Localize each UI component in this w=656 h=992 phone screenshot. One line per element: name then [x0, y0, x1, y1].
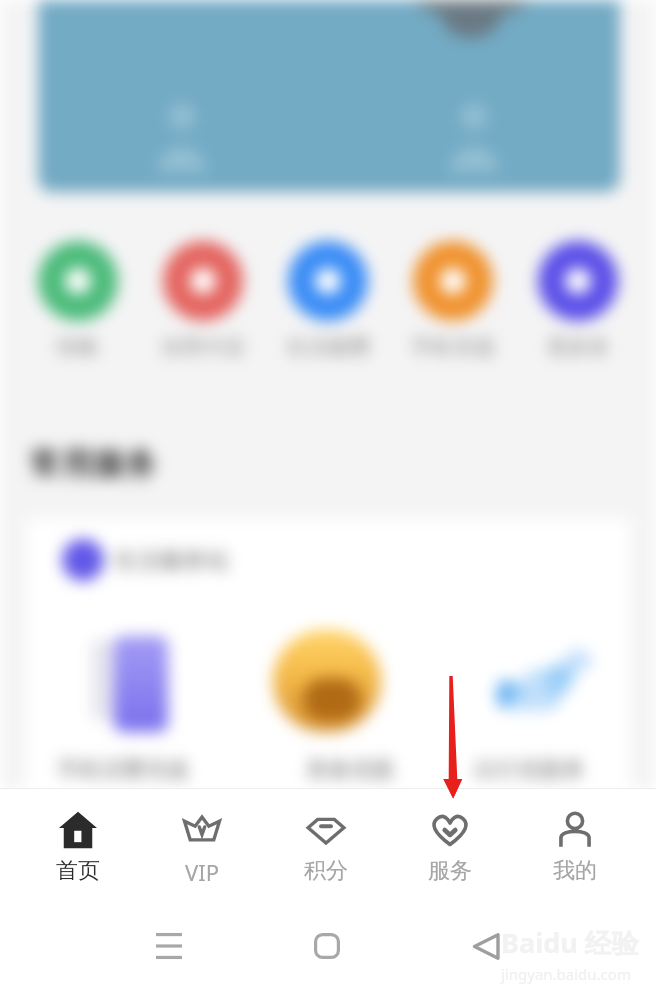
button[interactable] — [413, 241, 493, 321]
button[interactable]: 首页 — [19, 788, 137, 900]
staticText: jingyan.baidu.com — [501, 964, 631, 984]
staticText: 更多多 — [547, 334, 610, 360]
staticText: 常用服务 — [29, 444, 157, 484]
staticText: 服务 — [428, 857, 472, 885]
button[interactable]: VIP — [143, 788, 261, 900]
staticText: 首页 — [56, 857, 100, 885]
button[interactable]: 生活服务站 — [26, 518, 630, 790]
button[interactable]: Recent apps — [139, 916, 199, 976]
staticText: 生活缴费 — [286, 334, 370, 360]
staticText: 生活服务站 — [114, 546, 229, 575]
staticText: 出行优惠券 — [474, 756, 584, 784]
button[interactable]: 美食优惠 — [265, 756, 435, 784]
button[interactable]: 我的 — [516, 788, 634, 900]
button[interactable]: Home — [297, 916, 357, 976]
button[interactable]: 出行优惠券 — [444, 756, 614, 784]
staticText: 我的 — [553, 857, 597, 885]
staticText: 美食优惠 — [306, 756, 394, 784]
button[interactable]: Back — [456, 916, 516, 976]
button[interactable] — [538, 241, 618, 321]
button[interactable] — [288, 241, 368, 321]
staticText: 转账 — [57, 334, 99, 360]
button[interactable] — [38, 241, 118, 321]
button[interactable]: 积分 — [267, 788, 385, 900]
button[interactable] — [163, 241, 243, 321]
staticText: 积分 — [304, 857, 348, 885]
staticText: 信用卡还 — [161, 334, 245, 360]
staticText: VIP — [185, 857, 219, 887]
staticText: 手机话费充值 — [57, 756, 189, 784]
button[interactable]: 手机话费充值 — [38, 756, 208, 784]
button[interactable]: 服务 — [391, 788, 509, 900]
button[interactable] — [38, 0, 620, 192]
staticText: 手机充值 — [411, 334, 495, 360]
staticText: Baidu 经验 — [501, 924, 639, 961]
